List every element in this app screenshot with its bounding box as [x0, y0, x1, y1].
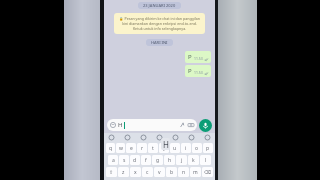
staticText: v: [158, 169, 161, 176]
button[interactable]: l: [200, 155, 211, 165]
staticText: u: [173, 145, 177, 152]
other: Attach: [179, 122, 185, 128]
staticText: z: [122, 169, 125, 176]
staticText: H: [118, 121, 123, 129]
button[interactable]: ⌫: [202, 167, 213, 177]
button[interactable]: o: [192, 143, 202, 153]
button[interactable]: Keyboard tool 2: [140, 134, 147, 141]
staticText: P: [188, 67, 192, 75]
staticText: f: [145, 157, 147, 164]
staticText: r: [141, 145, 144, 152]
staticText: 11.53: [194, 56, 203, 61]
button[interactable]: k: [188, 155, 199, 165]
button[interactable]: Keyboard tool 0: [108, 134, 115, 141]
button[interactable]: s: [119, 155, 129, 165]
staticText: 🔒 Pesan yang dikirim ke chat ini dan pan…: [119, 16, 200, 31]
staticText: l: [205, 157, 207, 164]
other: Camera: [188, 122, 194, 128]
button[interactable]: u: [170, 143, 180, 153]
button[interactable]: h: [164, 155, 175, 165]
staticText: i: [185, 145, 187, 152]
staticText: h: [168, 157, 172, 164]
staticText: j: [181, 157, 183, 164]
staticText: HARI INI: [151, 40, 168, 45]
button[interactable]: ⇧: [106, 167, 117, 177]
button[interactable]: z: [118, 167, 129, 177]
button[interactable]: m: [190, 167, 201, 177]
button[interactable]: Keyboard tool 6: [204, 134, 211, 141]
button[interactable]: f: [141, 155, 151, 165]
staticText: H: [163, 139, 169, 150]
button[interactable]: w: [116, 143, 125, 153]
staticText: y: [163, 145, 166, 152]
staticText: n: [182, 169, 186, 176]
button[interactable]: p: [203, 143, 213, 153]
button[interactable]: Voice message: [199, 119, 212, 132]
button[interactable]: d: [130, 155, 140, 165]
button[interactable]: t: [148, 143, 158, 153]
staticText: P: [188, 53, 192, 61]
staticText: 23 JANUARI 2020: [143, 3, 176, 8]
staticText: o: [195, 145, 199, 152]
button[interactable]: Keyboard tool 1: [124, 134, 131, 141]
button[interactable]: Keyboard tool 5: [188, 134, 195, 141]
button[interactable]: g: [152, 155, 163, 165]
staticText: m: [193, 169, 198, 176]
button[interactable]: c: [142, 167, 153, 177]
button[interactable]: P: [185, 65, 211, 77]
staticText: d: [133, 157, 137, 164]
button[interactable]: q: [106, 143, 115, 153]
staticText: 11.53: [194, 70, 203, 75]
staticText: b: [170, 169, 174, 176]
staticText: s: [123, 157, 126, 164]
button[interactable]: v: [154, 167, 165, 177]
button[interactable]: i: [181, 143, 191, 153]
button[interactable]: e: [126, 143, 136, 153]
button[interactable]: P: [185, 51, 211, 63]
staticText: c: [146, 169, 149, 176]
staticText: t: [152, 145, 154, 152]
button[interactable]: H: [107, 119, 197, 131]
button[interactable]: a: [108, 155, 118, 165]
staticText: a: [112, 157, 115, 164]
button[interactable]: b: [166, 167, 177, 177]
button[interactable]: x: [130, 167, 141, 177]
staticText: g: [156, 157, 160, 164]
button[interactable]: j: [176, 155, 187, 165]
staticText: x: [134, 169, 137, 176]
button[interactable]: Keyboard tool 3: [156, 134, 163, 141]
staticText: w: [119, 145, 123, 152]
staticText: e: [130, 145, 133, 152]
staticText: ⌫: [204, 169, 212, 175]
button[interactable]: Keyboard tool 4: [172, 134, 179, 141]
staticText: q: [109, 145, 113, 152]
staticText: ⇧: [109, 169, 114, 175]
button[interactable]: y: [159, 143, 169, 153]
staticText: p: [206, 145, 210, 152]
staticText: k: [192, 157, 195, 164]
button[interactable]: r: [137, 143, 147, 153]
button[interactable]: n: [178, 167, 189, 177]
